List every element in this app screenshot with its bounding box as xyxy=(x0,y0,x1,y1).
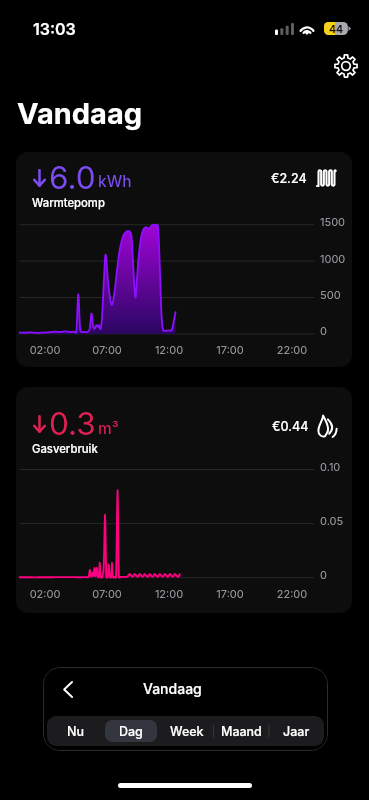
staticText: €2.24 xyxy=(271,171,307,186)
staticText: 12:00 xyxy=(151,343,187,356)
staticText: 44 xyxy=(329,23,344,36)
staticText: 13:03 xyxy=(33,19,76,38)
staticText: 07:00 xyxy=(89,587,125,600)
button[interactable]: Nu xyxy=(49,720,101,742)
staticText: 02:00 xyxy=(27,587,63,600)
button[interactable]: Back xyxy=(52,673,84,705)
staticText: Maand xyxy=(221,724,262,739)
staticText: 0 xyxy=(320,568,327,581)
staticText: Nu xyxy=(67,724,84,739)
button[interactable]: Settings xyxy=(329,49,363,83)
staticText: Warmtepomp xyxy=(32,196,105,210)
staticText: 22:00 xyxy=(274,587,310,600)
staticText: 17:00 xyxy=(212,587,248,600)
staticText: Gasverbruik xyxy=(32,442,98,456)
button[interactable]: Dag xyxy=(105,720,157,742)
button[interactable]: 0.3 xyxy=(16,387,352,613)
staticText: 0 xyxy=(320,324,327,337)
button[interactable]: Maand xyxy=(216,720,267,742)
staticText: 1000 xyxy=(320,252,346,265)
staticText: 500 xyxy=(320,288,341,301)
staticText: 0.05 xyxy=(320,514,344,527)
button[interactable]: Jaar xyxy=(271,720,322,742)
staticText: 17:00 xyxy=(212,343,248,356)
staticText: Vandaag xyxy=(143,680,202,697)
button[interactable]: Week xyxy=(161,720,212,742)
staticText: 0.10 xyxy=(320,460,341,473)
button[interactable]: 6.0 xyxy=(16,152,352,367)
staticText: 12:00 xyxy=(151,587,187,600)
staticText: 07:00 xyxy=(89,343,125,356)
staticText: 22:00 xyxy=(274,343,310,356)
staticText: 1500 xyxy=(320,215,346,228)
staticText: Jaar xyxy=(283,724,310,739)
staticText: kWh xyxy=(98,172,132,191)
staticText: 6.0 xyxy=(49,158,96,196)
staticText: Week xyxy=(170,724,204,739)
staticText: Vandaag xyxy=(17,96,143,131)
staticText: Dag xyxy=(119,724,143,739)
staticText: €0.44 xyxy=(272,419,309,434)
staticText: 02:00 xyxy=(27,343,63,356)
staticText: 0.3 xyxy=(49,404,96,442)
staticText: m³ xyxy=(98,419,119,438)
